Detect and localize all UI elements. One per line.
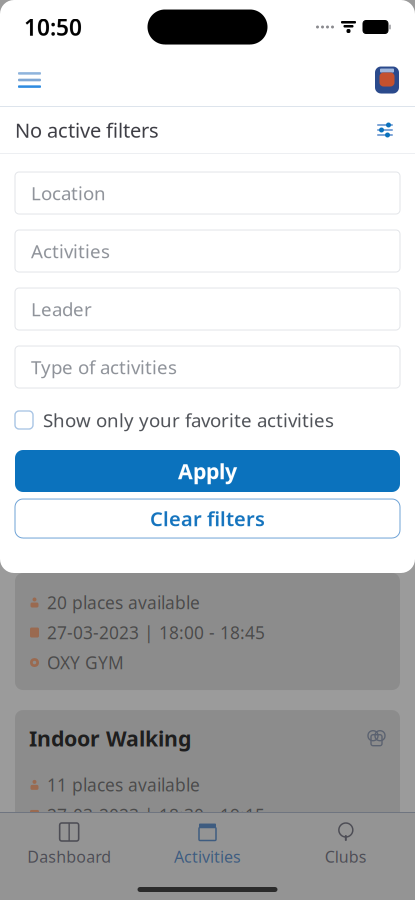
- button[interactable]: Location: [0, 172, 415, 214]
- button[interactable]: Show only your favorite activities: [0, 407, 415, 433]
- staticText: Location: [31, 181, 106, 205]
- button[interactable]: Activities: [0, 230, 415, 272]
- staticText: 27-03-2023 | 18:00 - 18:45: [47, 621, 265, 644]
- button[interactable]: Type of activities: [0, 346, 415, 388]
- staticText: Dashboard: [27, 846, 111, 867]
- staticText: Show only your favorite activities: [43, 408, 334, 432]
- button[interactable]: Dashboard: [0, 822, 138, 867]
- staticText: Indoor Walking: [29, 724, 191, 752]
- button[interactable]: Activities: [138, 822, 277, 867]
- staticText: Activities: [31, 239, 110, 263]
- button[interactable]: Clubs: [277, 822, 415, 867]
- button[interactable]: Club logo: [367, 58, 407, 101]
- staticText: OXY GYM: [47, 651, 124, 674]
- button[interactable]: Filters: [370, 115, 400, 145]
- staticText: Clear filters: [150, 505, 265, 532]
- button[interactable]: Menu: [8, 62, 51, 98]
- staticText: Leader: [31, 297, 92, 321]
- staticText: 20 places available: [47, 591, 200, 614]
- button[interactable]: Leader: [0, 288, 415, 330]
- button[interactable]: Apply: [15, 450, 400, 492]
- staticText: Type of activities: [31, 355, 177, 379]
- staticText: 11 places available: [47, 773, 200, 796]
- staticText: Clubs: [325, 846, 367, 867]
- staticText: 10:50: [24, 12, 82, 42]
- staticText: Apply: [178, 457, 237, 485]
- staticText: OXY GYM: [47, 833, 124, 856]
- button[interactable]: Indoor Walking: [15, 690, 400, 872]
- staticText: Activities: [174, 846, 241, 867]
- staticText: No active filters: [15, 117, 159, 143]
- button[interactable]: Clear filters: [15, 499, 400, 538]
- staticText: 27-03-2023 | 18:30 - 19:15: [47, 803, 265, 826]
